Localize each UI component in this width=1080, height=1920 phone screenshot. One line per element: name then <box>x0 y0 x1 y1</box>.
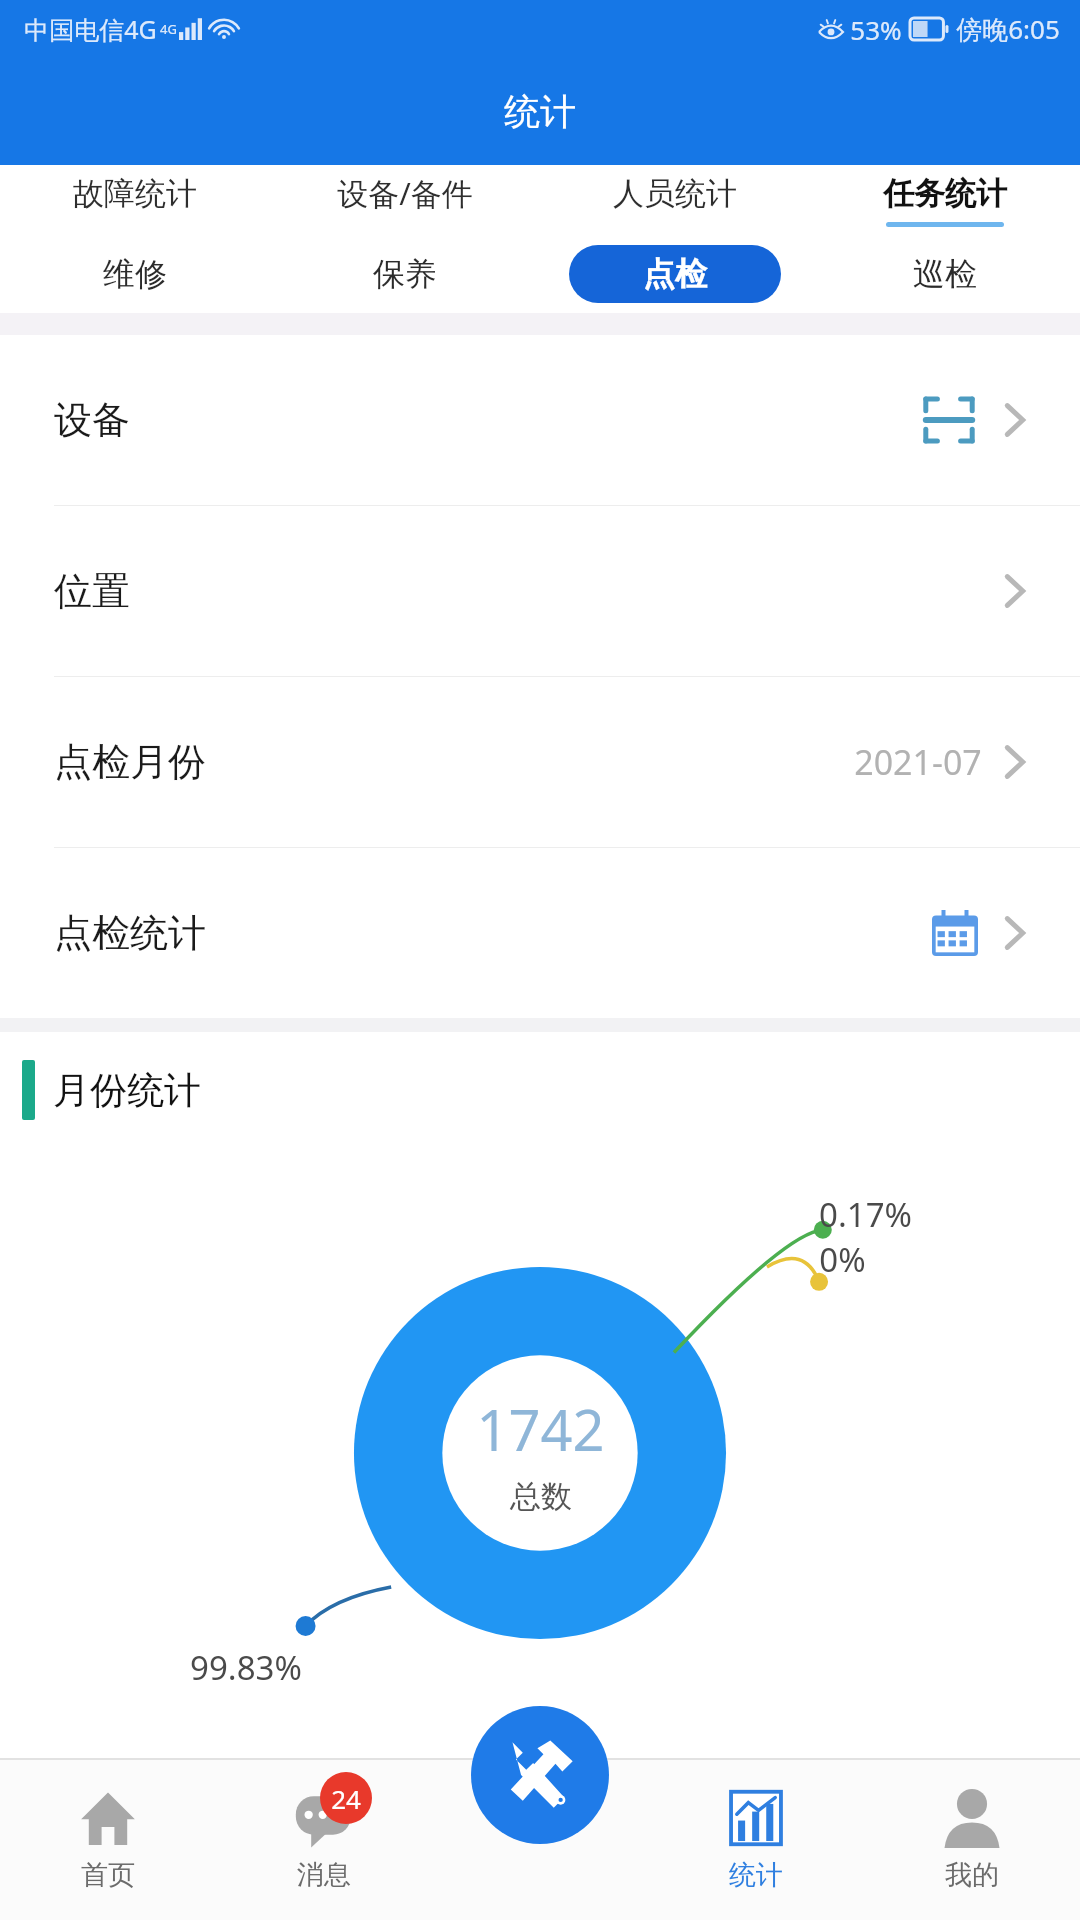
staticText: 24 <box>331 1781 361 1816</box>
button[interactable]: 首页 <box>0 1758 216 1920</box>
button[interactable]: 保养 <box>270 235 540 313</box>
staticText: 月份统计 <box>53 1067 201 1114</box>
staticText: 任务统计 <box>883 174 1007 213</box>
staticText: 我的 <box>945 1858 999 1892</box>
staticText: 点检月份 <box>54 738 206 786</box>
staticText: 53% <box>850 12 902 47</box>
button[interactable]: 点检 <box>540 235 810 313</box>
staticText: 人员统计 <box>613 174 737 213</box>
staticText: 巡检 <box>913 254 977 294</box>
staticText: 1742 <box>476 1391 605 1467</box>
staticText: 傍晚6:05 <box>956 11 1060 47</box>
staticText: 中国电信4G <box>24 12 157 46</box>
staticText: 统计 <box>504 89 576 134</box>
button[interactable]: 工具 <box>471 1706 609 1844</box>
staticText: 总数 <box>510 1477 572 1516</box>
staticText: 0.17% <box>819 1192 912 1237</box>
staticText: 首页 <box>81 1858 135 1892</box>
staticText: 2021-07 <box>854 739 982 785</box>
staticText: 统计 <box>729 1858 783 1892</box>
staticText: 4G <box>160 20 177 38</box>
staticText: 99.83% <box>190 1645 302 1690</box>
button[interactable]: 24 <box>216 1758 432 1920</box>
button[interactable]: 任务统计 <box>810 165 1080 235</box>
staticText: 位置 <box>54 567 130 615</box>
button[interactable]: 设备 <box>0 335 1080 505</box>
staticText: 点检 <box>643 254 707 294</box>
button[interactable]: 故障统计 <box>0 165 270 235</box>
button[interactable]: 人员统计 <box>540 165 810 235</box>
button[interactable]: 巡检 <box>810 235 1080 313</box>
staticText: 消息 <box>297 1858 351 1892</box>
button[interactable]: 点检月份 <box>0 677 1080 847</box>
staticText: 设备 <box>54 396 130 444</box>
staticText: 0% <box>819 1237 866 1282</box>
button[interactable]: 统计 <box>648 1758 864 1920</box>
button[interactable]: 日历 <box>932 910 978 956</box>
button[interactable]: 设备/备件 <box>270 165 540 235</box>
staticText: 设备/备件 <box>337 172 473 214</box>
button[interactable]: 我的 <box>864 1758 1080 1920</box>
button[interactable]: 扫码 <box>920 391 978 449</box>
staticText: 故障统计 <box>73 174 197 213</box>
button[interactable]: 维修 <box>0 235 270 313</box>
staticText: 保养 <box>373 254 437 294</box>
button[interactable]: 位置 <box>0 506 1080 676</box>
staticText: 维修 <box>103 254 167 294</box>
button[interactable]: 点检统计 <box>0 848 1080 1018</box>
staticText: 点检统计 <box>54 909 206 957</box>
